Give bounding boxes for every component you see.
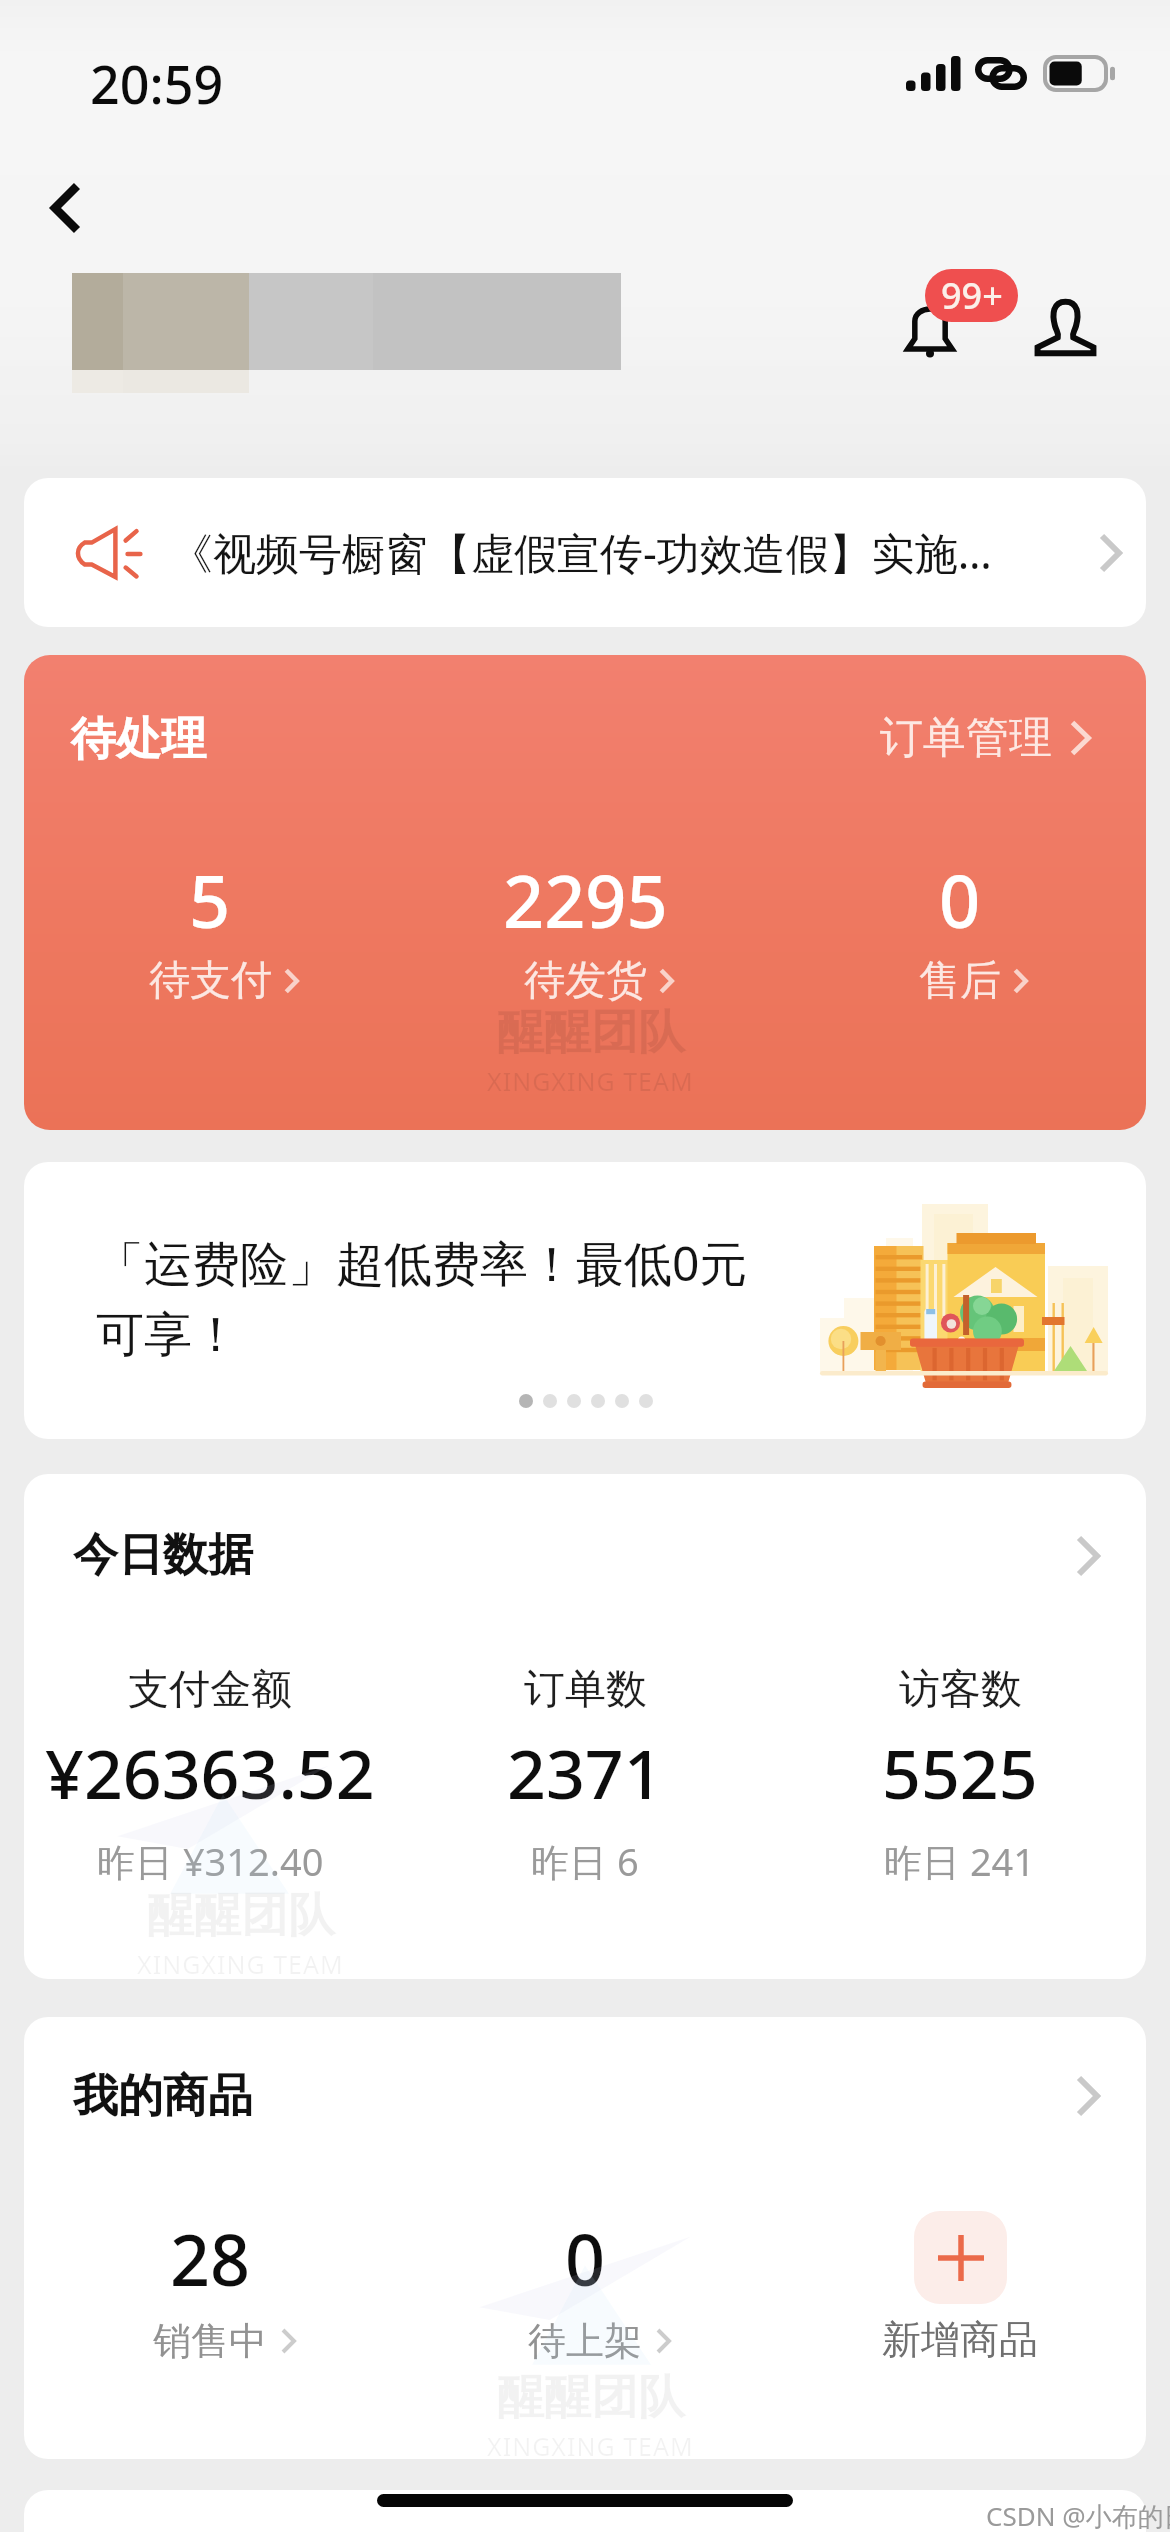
staticText: 醒醒团队 (147, 1886, 335, 1945)
staticText: 待处理 (71, 711, 206, 768)
button[interactable]: Back (20, 162, 112, 254)
staticText: XINGXING TEAM (487, 1064, 694, 1098)
staticText: 0 (565, 2211, 606, 2306)
staticText: 《视频号橱窗【虚假宣传-功效造假】实施… (170, 523, 1095, 582)
button[interactable]: 新增商品 (775, 2211, 1145, 2364)
button[interactable]: Profile (1016, 272, 1114, 382)
staticText: 0 (939, 851, 981, 949)
button[interactable]: 2295 (425, 851, 745, 1007)
staticText: XINGXING TEAM (137, 1947, 344, 1981)
staticText: 醒醒团队 (497, 2368, 685, 2427)
staticText: 28 (170, 2211, 251, 2306)
staticText: 昨日 241 (884, 1835, 1036, 1887)
button[interactable]: 28 (25, 2211, 395, 2365)
staticText: 今日数据 (73, 1527, 253, 1584)
staticText: 5525 (882, 1726, 1038, 1819)
staticText: 醒醒团队 (497, 1003, 685, 1062)
button[interactable]: 今日数据 (73, 1474, 1100, 1637)
staticText: 待发货 (524, 955, 647, 1007)
staticText: 5 (189, 851, 231, 949)
button[interactable]: 5 (50, 851, 370, 1007)
staticText: 订单数 (524, 1664, 647, 1716)
staticText: 销售中 (153, 2317, 267, 2365)
staticText: 99+ (941, 271, 1003, 320)
staticText: CSDN @小布的日常 (986, 2498, 1170, 2532)
staticText: 访客数 (899, 1664, 1022, 1716)
staticText: 待支付 (149, 955, 272, 1007)
staticText: 昨日 6 (531, 1835, 639, 1887)
staticText: ¥26363.52 (45, 1726, 375, 1819)
staticText: 订单管理 (880, 711, 1052, 765)
button[interactable]: 订单管理 (880, 711, 1091, 765)
button[interactable]: 我的商品 (73, 2017, 1100, 2175)
button[interactable]: 0 (800, 851, 1120, 1007)
staticText: 待上架 (528, 2317, 642, 2365)
staticText: 20:59 (90, 48, 224, 119)
button[interactable]: 0 (400, 2211, 770, 2365)
button[interactable]: 《视频号橱窗【虚假宣传-功效造假】实施… (24, 478, 1146, 627)
button[interactable]: 「运费险」超低费率！最低0元 可享！ (24, 1162, 1146, 1439)
staticText: 2295 (503, 851, 668, 949)
button[interactable]: Shop name (72, 273, 622, 395)
staticText: 昨日 ¥312.40 (97, 1835, 324, 1887)
staticText: 「运费险」超低费率！最低0元 可享！ (96, 1230, 748, 1366)
staticText: 我的商品 (73, 2068, 253, 2125)
staticText: 新增商品 (882, 2315, 1038, 2364)
staticText: 支付金额 (128, 1664, 292, 1716)
staticText: 售后 (919, 955, 1001, 1007)
staticText: XINGXING TEAM (487, 2429, 694, 2463)
staticText: 2371 (507, 1726, 663, 1819)
button[interactable]: Notifications (890, 260, 1030, 380)
